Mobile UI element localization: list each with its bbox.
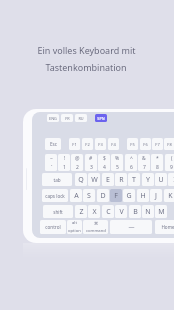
staticText: $ [103,155,106,162]
staticText: control [45,224,61,230]
button[interactable]: X [88,205,100,218]
staticText: 1 [63,164,66,171]
button[interactable]: % [111,154,123,171]
staticText: 9 [170,164,173,171]
button[interactable]: A [70,189,82,202]
button[interactable]: ENG [47,114,59,122]
staticText: F6 [143,142,148,147]
staticText: 4 [103,164,106,171]
staticText: H [140,191,146,201]
button[interactable]: caps lock [42,189,68,202]
button[interactable]: I [168,173,174,186]
button[interactable]: tab [42,173,72,186]
button[interactable]: ! [58,154,70,171]
button[interactable]: F8 [164,138,174,150]
button[interactable]: @ [71,154,83,171]
staticText: D [100,191,106,201]
staticText: F4 [111,142,116,147]
button[interactable]: FR [61,114,73,122]
staticText: ENG [49,116,57,121]
staticText: R [119,175,124,185]
button[interactable]: RU [75,114,87,122]
staticText: F5 [130,142,135,147]
staticText: T [132,175,136,185]
button[interactable]: control [40,220,66,234]
button[interactable]: ~ [45,154,57,171]
staticText: W [91,175,98,185]
button[interactable]: F7 [152,138,163,150]
staticText: Q [78,175,84,185]
staticText: Ein volles Keyboard mit [37,44,136,56]
staticText: X [92,207,97,217]
button[interactable]: T [128,173,140,186]
staticText: Home [161,224,174,230]
staticText: 8 [156,164,159,171]
staticText: command [86,228,106,234]
staticText: RU [78,116,84,121]
staticText: ! [64,155,66,162]
button[interactable]: U [155,173,167,186]
button[interactable]: F5 [127,138,138,150]
button[interactable]: N [142,205,154,218]
staticText: S [87,191,91,201]
button[interactable]: $ [98,154,110,171]
staticText: Z [79,207,84,217]
staticText: ⌘ [94,221,99,226]
button[interactable]: G [123,189,135,202]
button[interactable]: F1 [69,138,80,150]
button[interactable]: R [115,173,127,186]
staticText: shift [53,209,63,215]
button[interactable]: ( [165,154,174,171]
button[interactable]: F2 [82,138,93,150]
staticText: SPN [97,116,105,121]
staticText: tab [53,177,61,183]
button[interactable]: SPN [95,114,107,122]
button[interactable]: B [129,205,141,218]
button[interactable]: & [138,154,150,171]
button[interactable]: Home [155,220,174,234]
staticText: F7 [155,142,160,147]
button[interactable]: * [151,154,163,171]
staticText: A [74,191,79,201]
button[interactable]: D [97,189,109,202]
staticText: G [126,191,132,201]
staticText: C [106,207,111,217]
staticText: 2 [76,164,79,171]
button[interactable]: S [83,189,95,202]
button[interactable]: alt [67,220,82,234]
staticText: # [89,155,93,162]
button[interactable]: W [88,173,100,186]
button[interactable]: shift [43,205,73,218]
button[interactable]: K [164,189,174,202]
button[interactable]: # [85,154,97,171]
staticText: ( [171,155,173,162]
button[interactable]: Q [75,173,87,186]
staticText: E [106,175,110,185]
button[interactable]: Y [142,173,154,186]
button[interactable]: ^ [125,154,137,171]
button[interactable]: Esc [45,138,61,150]
button[interactable]: J [150,189,162,202]
button[interactable]: Z [75,205,87,218]
button[interactable]: ⌘ [83,220,108,234]
staticText: ― [128,223,135,231]
button[interactable]: F4 [108,138,119,150]
button[interactable]: F [110,189,122,202]
button[interactable]: H [137,189,149,202]
staticText: I [173,175,174,185]
staticText: FR [65,116,70,121]
staticText: F1 [72,142,77,147]
button[interactable]: ― [110,220,152,234]
button[interactable]: F3 [95,138,106,150]
button[interactable]: E [102,173,114,186]
staticText: 7 [143,164,146,171]
staticText: F2 [85,142,90,147]
staticText: V [119,207,124,217]
button[interactable]: F6 [140,138,151,150]
staticText: ^ [130,155,133,162]
button[interactable]: V [115,205,127,218]
staticText: M [158,207,165,217]
staticText: ` [51,164,53,171]
button[interactable]: M [155,205,167,218]
button[interactable]: C [102,205,114,218]
